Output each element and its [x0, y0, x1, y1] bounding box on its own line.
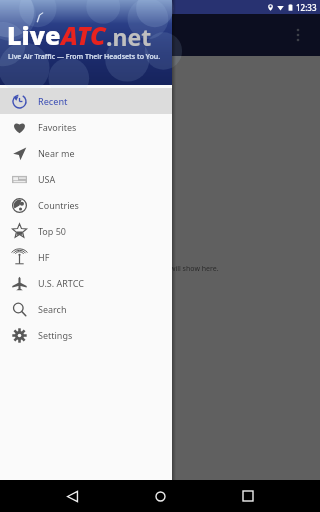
- staticText: Search: [38, 303, 67, 315]
- button[interactable]: Search: [0, 296, 172, 322]
- staticText: Countries: [38, 199, 79, 211]
- staticText: U.S. ARTCC: [38, 277, 84, 289]
- button[interactable]: USA: [0, 166, 172, 192]
- button[interactable]: Back: [56, 480, 88, 512]
- button[interactable]: Favorites: [0, 114, 172, 140]
- button[interactable]: Top 50: [0, 218, 172, 244]
- staticText: HF: [38, 251, 50, 263]
- staticText: ATC: [61, 18, 106, 52]
- button[interactable]: Home: [144, 480, 176, 512]
- button[interactable]: U.S. ARTCC: [0, 270, 172, 296]
- button[interactable]: HF: [0, 244, 172, 270]
- staticText: .net: [106, 21, 152, 52]
- staticText: Near me: [38, 147, 75, 159]
- staticText: Favorites: [38, 121, 77, 133]
- button[interactable]: Countries: [0, 192, 172, 218]
- staticText: Your recent stations will show here.: [102, 264, 219, 274]
- staticText: Top 50: [38, 225, 66, 237]
- button[interactable]: Recents: [232, 480, 264, 512]
- staticText: Live Air Traffic — From Their Headsets t…: [8, 52, 161, 62]
- button[interactable]: Settings: [0, 322, 172, 348]
- button[interactable]: Near me: [0, 140, 172, 166]
- staticText: Live: [7, 18, 61, 52]
- staticText: USA: [38, 173, 56, 185]
- staticText: Settings: [38, 329, 73, 341]
- button[interactable]: More options: [282, 19, 314, 51]
- staticText: Recent: [38, 95, 68, 107]
- staticText: 12:33: [296, 2, 317, 13]
- button[interactable]: Recent: [0, 88, 172, 114]
